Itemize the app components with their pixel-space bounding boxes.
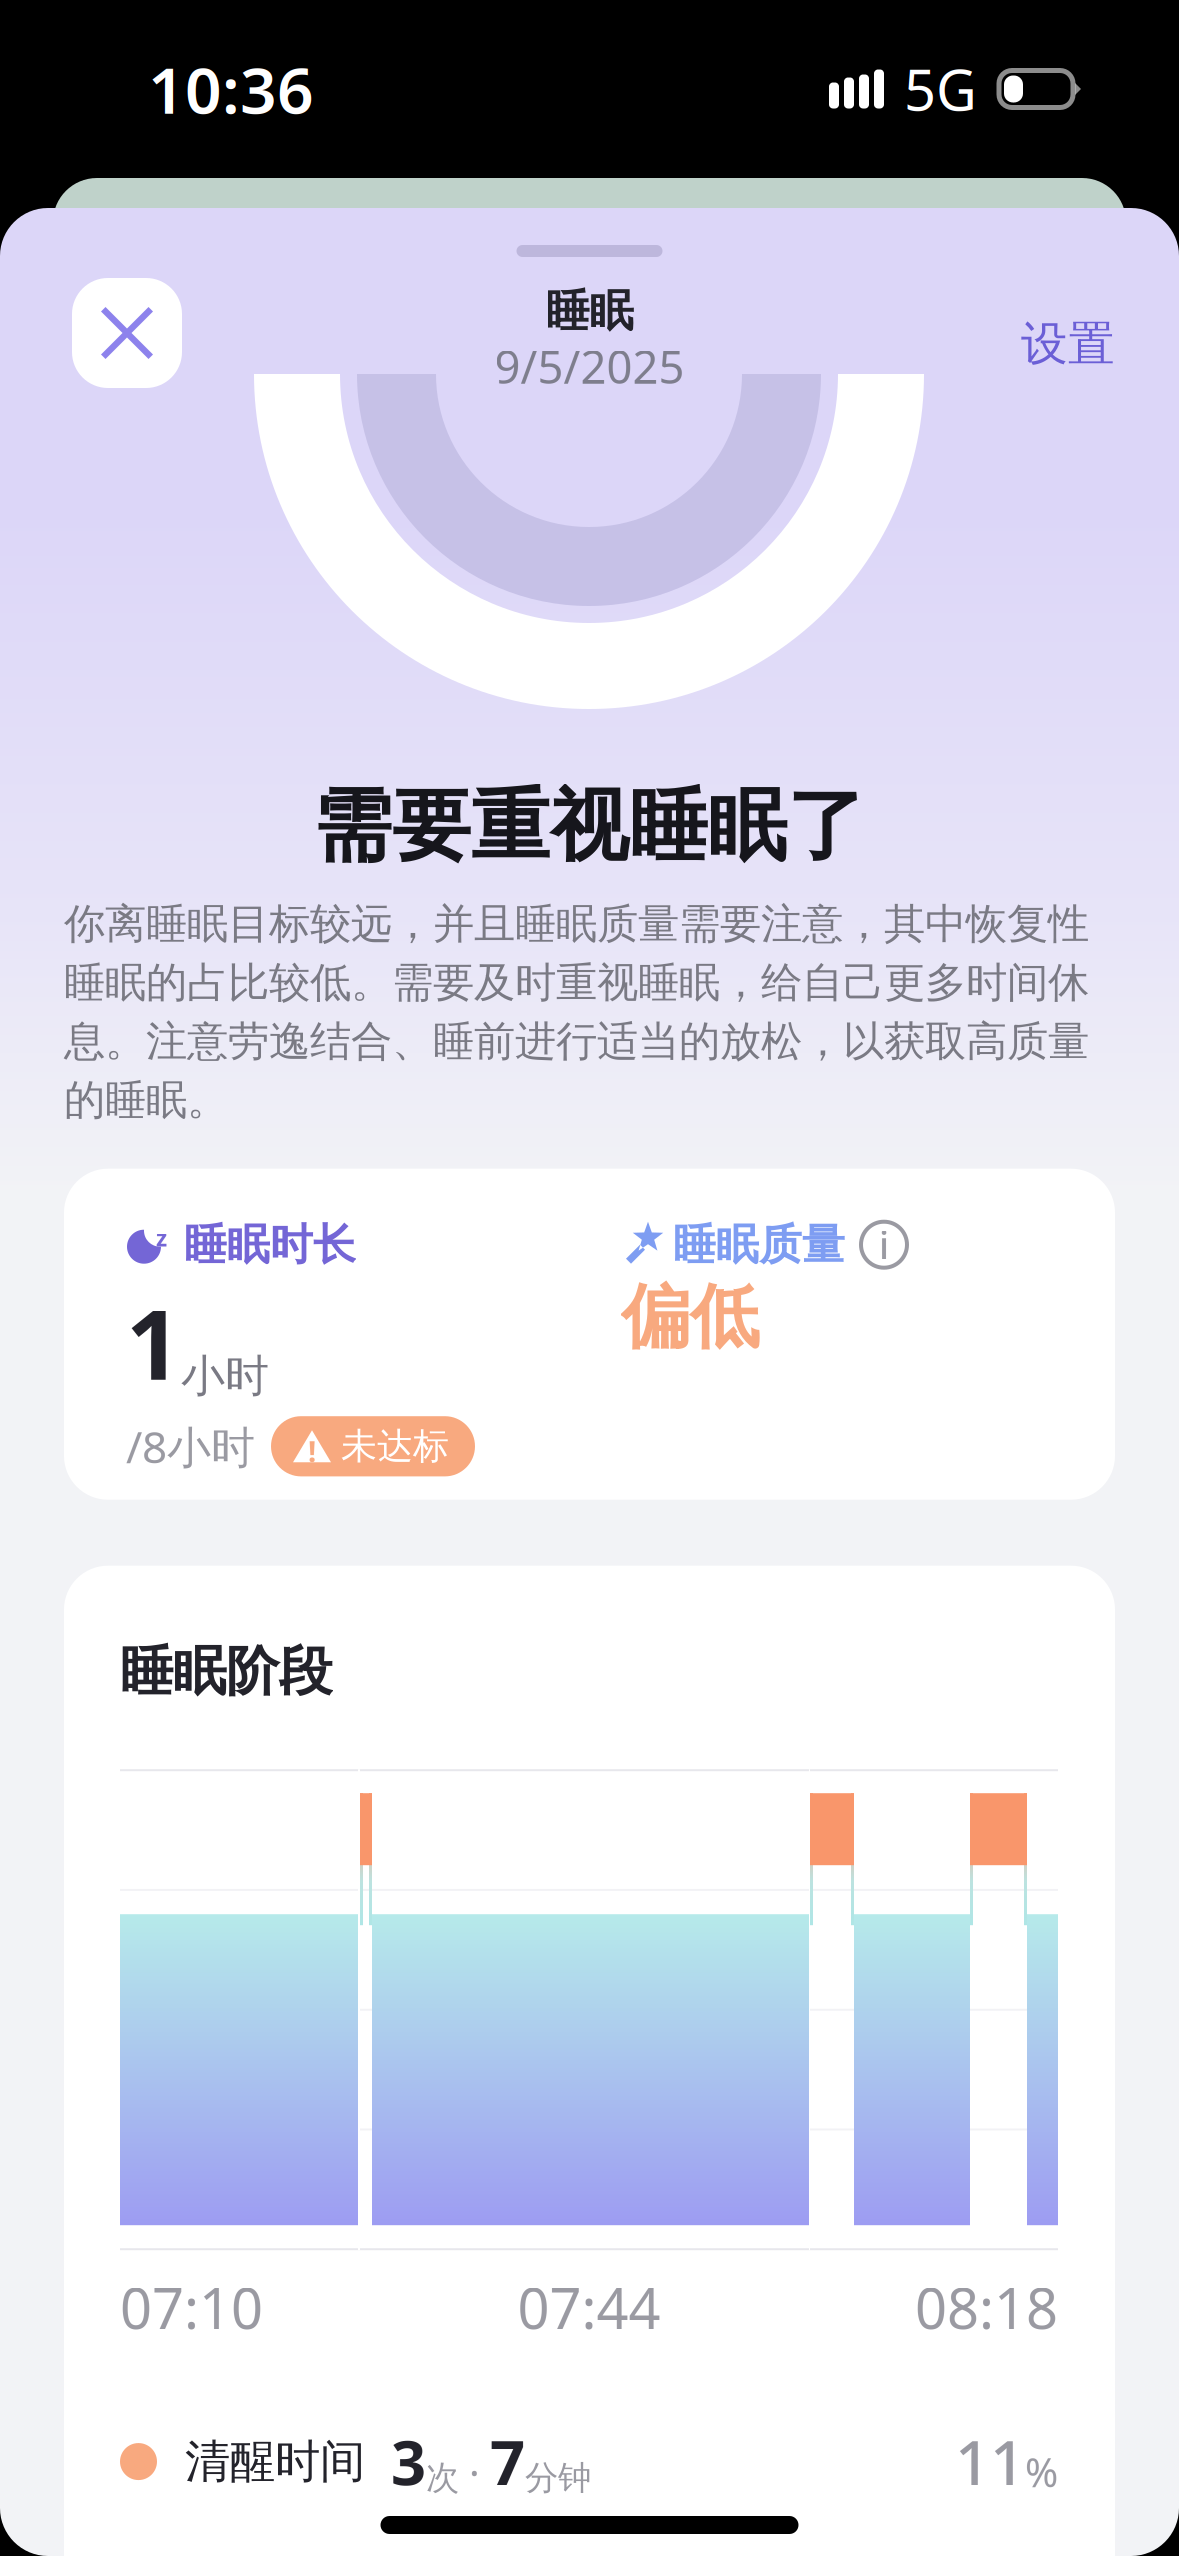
staticText: i bbox=[879, 1220, 889, 1269]
button[interactable]: 清醒时间 bbox=[64, 2345, 1058, 2489]
staticText: ! bbox=[308, 1431, 316, 1470]
button[interactable]: Close bbox=[72, 278, 182, 388]
staticText: /8小时 bbox=[126, 1417, 255, 1475]
staticText: 分钟 bbox=[525, 2457, 591, 2498]
staticText: 睡眠 bbox=[545, 284, 633, 338]
staticText: 你离睡眠目标较远，并且睡眠质量需要注意，其中恢复性 bbox=[64, 899, 1089, 949]
staticText: 睡眠的占比较低。需要及时重视睡眠，给自己更多时间休 bbox=[64, 957, 1089, 1008]
staticText: 10:36 bbox=[148, 46, 314, 131]
staticText: 次 bbox=[426, 2457, 459, 2498]
staticText: 11 bbox=[955, 2421, 1025, 2502]
staticText: 07:10 bbox=[120, 2270, 263, 2345]
staticText: 清醒时间 bbox=[185, 2434, 365, 2489]
staticText: 小时 bbox=[181, 1349, 269, 1403]
staticText: 息。注意劳逸结合、睡前进行适当的放松，以获取高质量 bbox=[64, 1016, 1089, 1067]
staticText: % bbox=[1025, 2445, 1058, 2498]
button[interactable]: 设置 bbox=[1021, 293, 1115, 373]
staticText: 需要重视睡眠了 bbox=[313, 778, 866, 875]
staticText: 9/5/2025 bbox=[494, 336, 684, 396]
staticText: 7 bbox=[490, 2421, 525, 2502]
staticText: 5G bbox=[904, 52, 977, 126]
staticText: z bbox=[156, 1223, 167, 1253]
staticText: · bbox=[459, 2445, 490, 2498]
staticText: 睡眠时长 bbox=[184, 1218, 356, 1271]
staticText: 1 bbox=[126, 1279, 181, 1406]
staticText: 未达标 bbox=[341, 1424, 449, 1468]
staticText: 的睡眠。 bbox=[64, 1075, 228, 1126]
staticText: 睡眠质量 bbox=[673, 1218, 845, 1271]
staticText: 睡眠阶段 bbox=[120, 1639, 332, 1704]
staticText: 08:18 bbox=[915, 2270, 1058, 2345]
staticText: 07:44 bbox=[517, 2270, 660, 2345]
staticText: 3 bbox=[391, 2421, 426, 2502]
staticText: 设置 bbox=[1021, 315, 1115, 373]
staticText: 偏低 bbox=[621, 1275, 759, 1360]
